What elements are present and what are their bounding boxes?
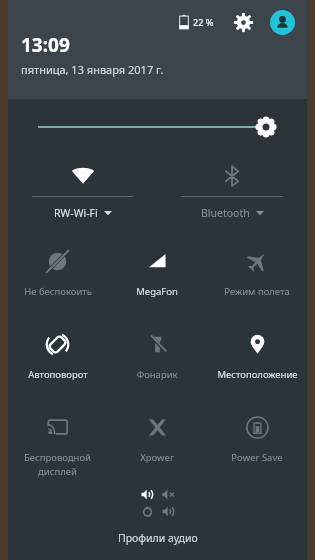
staticText: Профили аудио bbox=[118, 531, 198, 545]
button[interactable]: Автоповорот bbox=[8, 319, 107, 402]
button[interactable]: RW-Wi-Fi bbox=[8, 154, 157, 236]
staticText: Power Save bbox=[231, 451, 283, 464]
button[interactable]: Power Save bbox=[207, 402, 307, 485]
button[interactable]: Профили аудио bbox=[8, 488, 307, 560]
button[interactable]: Местоположение bbox=[207, 319, 307, 402]
staticText: Фонарик bbox=[136, 368, 178, 381]
button[interactable]: Фонарик bbox=[107, 319, 207, 402]
button[interactable]: User account bbox=[270, 10, 295, 35]
staticText: Автоповорот bbox=[28, 368, 88, 381]
button[interactable]: Xpower bbox=[107, 402, 207, 485]
button[interactable]: Settings bbox=[230, 9, 256, 35]
staticText: дисплей bbox=[38, 465, 77, 478]
staticText: Xpower bbox=[140, 451, 174, 464]
staticText: MegaFon bbox=[136, 285, 178, 298]
staticText: Местоположение bbox=[217, 368, 298, 381]
staticText: 13:09 bbox=[21, 32, 70, 58]
staticText: 22 % bbox=[193, 16, 214, 28]
staticText: Режим полета bbox=[224, 285, 290, 298]
button[interactable]: Brightness bbox=[8, 99, 307, 154]
button[interactable]: Не беспокоить bbox=[8, 236, 107, 319]
staticText: RW-Wi-Fi bbox=[54, 206, 98, 220]
button[interactable]: Режим полета bbox=[207, 236, 307, 319]
staticText: Беспроводной bbox=[24, 451, 91, 464]
button[interactable]: MegaFon bbox=[107, 236, 207, 319]
staticText: Не беспокоить bbox=[24, 285, 92, 298]
button[interactable]: Беспроводной bbox=[8, 402, 107, 485]
staticText: Bluetooth bbox=[201, 206, 250, 220]
button[interactable]: Bluetooth bbox=[157, 154, 307, 236]
staticText: пятница, 13 января 2017 г. bbox=[21, 62, 164, 77]
